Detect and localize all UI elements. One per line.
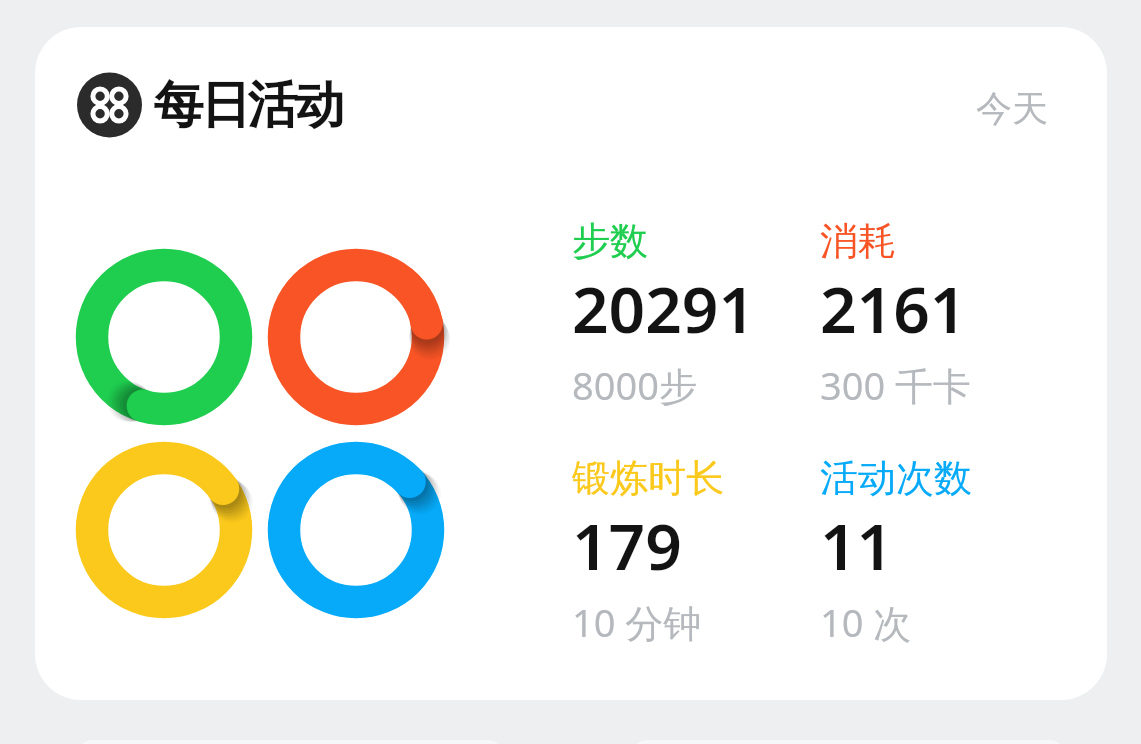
staticText: 锻炼时长 (572, 454, 724, 502)
staticText: 2161 (820, 265, 967, 352)
staticText: 20291 (572, 265, 756, 352)
staticText: 步数 (572, 217, 648, 265)
staticText: 11 (820, 502, 894, 589)
staticText: 今天 (976, 86, 1048, 131)
staticText: 179 (572, 502, 682, 589)
staticText: 消耗 (820, 217, 896, 265)
staticText: 8000步 (572, 359, 697, 411)
staticText: 300 千卡 (820, 359, 972, 411)
staticText: 每日活动 (155, 74, 343, 137)
button[interactable]: 每日活动 (35, 27, 1107, 700)
staticText: 10 分钟 (572, 596, 702, 648)
staticText: 10 次 (820, 596, 912, 648)
staticText: 活动次数 (820, 454, 972, 502)
